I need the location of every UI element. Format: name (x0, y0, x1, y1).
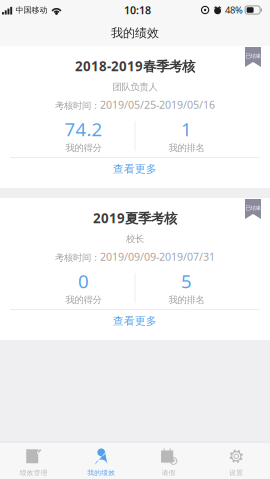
staticText: 请假 (162, 469, 176, 477)
staticText: 2018-2019春季考核 (75, 57, 195, 75)
staticText: 我的排名 (168, 142, 204, 154)
staticText: 我的绩效 (111, 26, 159, 40)
staticText: 74.2 (64, 117, 102, 141)
button[interactable]: 我的绩效 (67, 442, 135, 479)
staticText: 我的绩效 (87, 469, 115, 477)
staticText: 中国移动 (15, 5, 47, 15)
staticText: 已结束 (245, 205, 260, 211)
staticText: 我的排名 (168, 294, 204, 306)
staticText: 我的得分 (65, 142, 101, 154)
button[interactable]: 查看更多 (0, 154, 270, 184)
staticText: 我的得分 (65, 294, 101, 306)
staticText: 设置 (229, 469, 243, 477)
staticText: 考核时间：2019/05/25-2019/05/16 (55, 97, 215, 112)
staticText: 1 (181, 117, 192, 141)
button[interactable]: 查看更多 (0, 306, 270, 336)
staticText: 绩效管理 (20, 469, 48, 477)
button[interactable]: 设置 (202, 442, 270, 479)
button[interactable]: 请假 (135, 442, 202, 479)
staticText: 0 (78, 269, 89, 293)
staticText: 查看更多 (113, 162, 157, 175)
button[interactable]: 绩效管理 (0, 442, 67, 479)
staticText: 查看更多 (113, 314, 157, 327)
staticText: 考核时间：2019/09/09-2019/07/31 (55, 249, 215, 264)
staticText: 10:18 (124, 3, 151, 17)
staticText: 已结束 (245, 53, 260, 59)
staticText: 5 (181, 269, 192, 293)
staticText: 团队负责人 (112, 81, 157, 93)
staticText: 校长 (126, 233, 144, 245)
staticText: 48% (225, 4, 243, 16)
staticText: 2019夏季考核 (93, 209, 177, 227)
